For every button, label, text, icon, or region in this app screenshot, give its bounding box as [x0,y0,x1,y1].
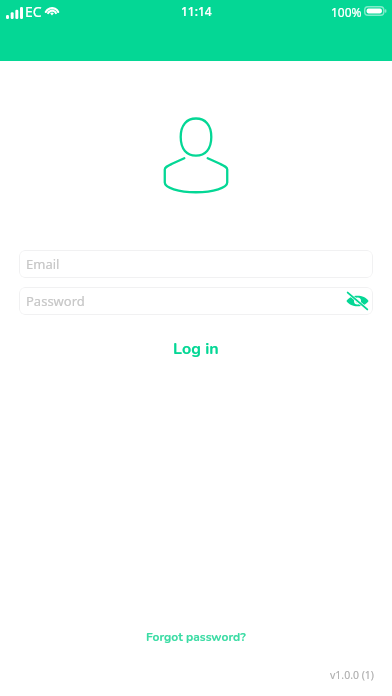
staticText: Log in [173,338,219,360]
staticText: Password [26,292,85,310]
button[interactable]: Email [19,250,373,278]
staticText: Email [26,255,60,273]
staticText: 100% [331,4,362,20]
button[interactable]: Show password [344,288,370,314]
staticText: v1.0.0 (1) [330,668,375,682]
staticText: EC [25,2,42,21]
button[interactable]: Password [19,287,373,315]
staticText: 11:14 [181,3,212,19]
button[interactable]: Log in [0,338,392,360]
staticText: Forgot password? [146,629,246,645]
button[interactable]: Forgot password? [146,629,246,645]
